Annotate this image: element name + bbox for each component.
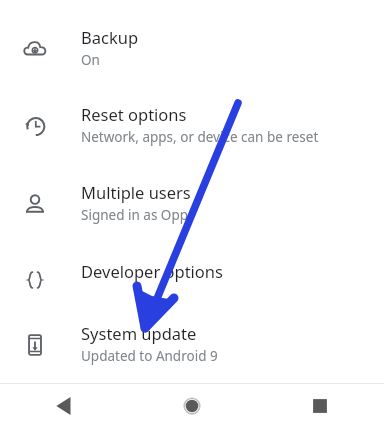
staticText: Multiple users <box>81 181 191 203</box>
staticText: Backup <box>81 26 139 48</box>
button[interactable]: Backup <box>0 22 384 84</box>
staticText: Network, apps, or device can be reset <box>81 128 319 146</box>
staticText: On <box>81 51 100 69</box>
button[interactable]: System update <box>0 318 384 380</box>
button[interactable]: Multiple users <box>0 177 384 239</box>
staticText: System update <box>81 322 197 344</box>
button[interactable]: Back <box>0 383 128 428</box>
button[interactable]: Home <box>128 383 256 428</box>
button[interactable]: Developer options <box>0 256 384 302</box>
staticText: Updated to Android 9 <box>81 347 218 365</box>
button[interactable]: Reset options <box>0 99 384 161</box>
staticText: Reset options <box>81 103 187 125</box>
button[interactable]: Recents <box>256 383 384 428</box>
staticText: Signed in as Opp <box>81 206 189 224</box>
staticText: Developer options <box>81 260 223 282</box>
